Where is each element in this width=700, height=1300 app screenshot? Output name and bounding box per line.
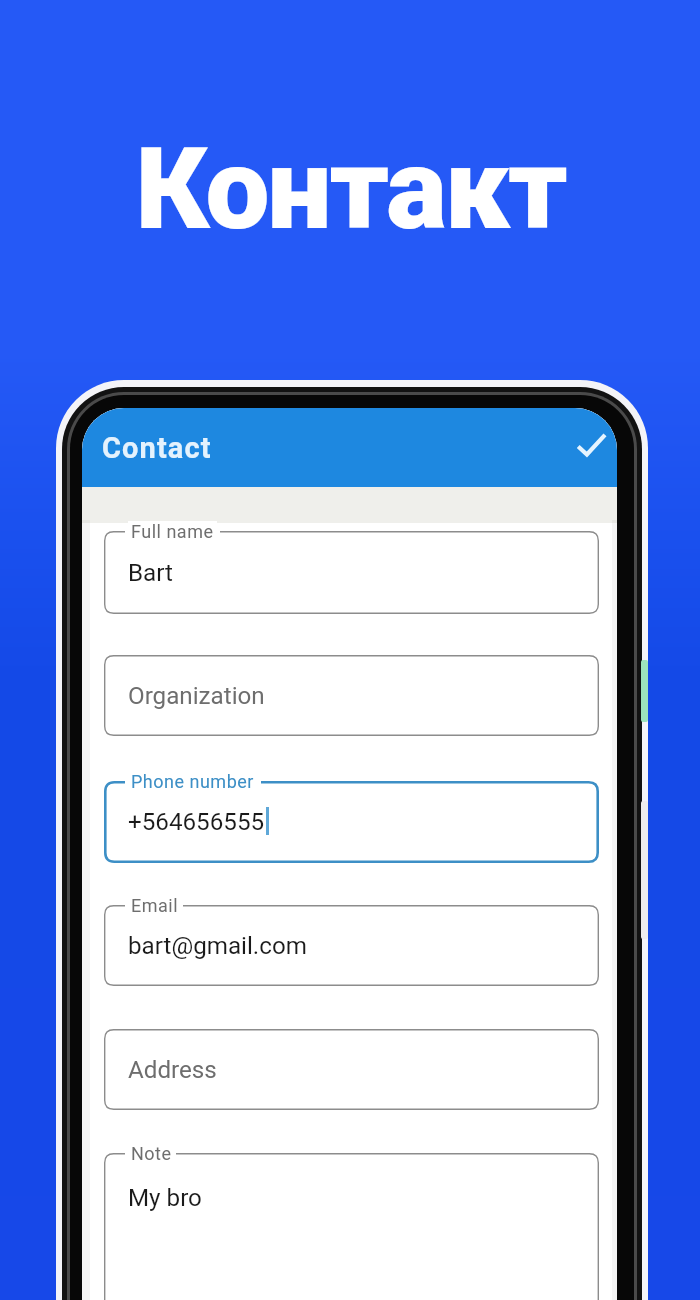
staticText: bart@gmail.com bbox=[128, 932, 307, 960]
staticText: Note bbox=[131, 1143, 172, 1164]
button[interactable]: Address bbox=[104, 1029, 599, 1110]
button[interactable]: Email bbox=[104, 905, 599, 986]
staticText: Phone number bbox=[131, 771, 254, 792]
staticText: Organization bbox=[128, 682, 265, 710]
button[interactable]: Organization bbox=[104, 655, 599, 736]
staticText: Address bbox=[128, 1056, 217, 1084]
staticText: Email bbox=[131, 895, 179, 916]
staticText: Full name bbox=[131, 521, 214, 542]
staticText: My bro bbox=[128, 1184, 202, 1212]
staticText: Контакт bbox=[135, 122, 566, 256]
button[interactable]: Phone number bbox=[104, 781, 599, 863]
staticText: Contact bbox=[102, 431, 212, 465]
button[interactable]: Note bbox=[104, 1153, 599, 1300]
button[interactable]: Full name bbox=[104, 531, 599, 614]
staticText: +564656555 bbox=[128, 808, 265, 836]
staticText: Bart bbox=[128, 559, 173, 587]
button[interactable]: Save contact bbox=[559, 419, 617, 477]
